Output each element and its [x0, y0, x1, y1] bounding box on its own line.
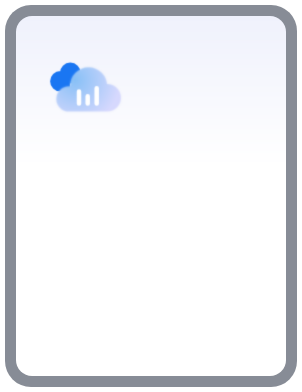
button[interactable]: Weather statistics: [16, 16, 286, 376]
